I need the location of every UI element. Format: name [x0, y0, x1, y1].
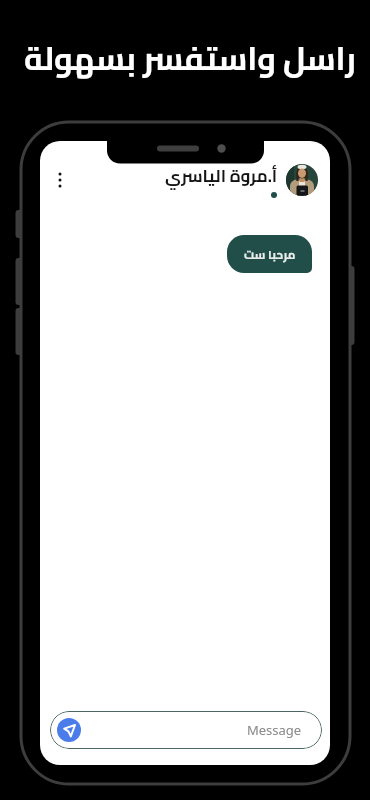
button[interactable]: مرحبا ست	[227, 235, 312, 273]
staticText: مرحبا ست	[244, 243, 296, 265]
staticText: راسل واستفسر بسهولة	[24, 28, 356, 88]
button[interactable]	[57, 718, 81, 742]
button[interactable]	[286, 164, 318, 196]
staticText: أ.مروة الياسري	[165, 160, 278, 192]
button[interactable]	[48, 168, 72, 192]
staticText: Message	[247, 721, 302, 739]
button[interactable]: Message	[50, 711, 322, 749]
